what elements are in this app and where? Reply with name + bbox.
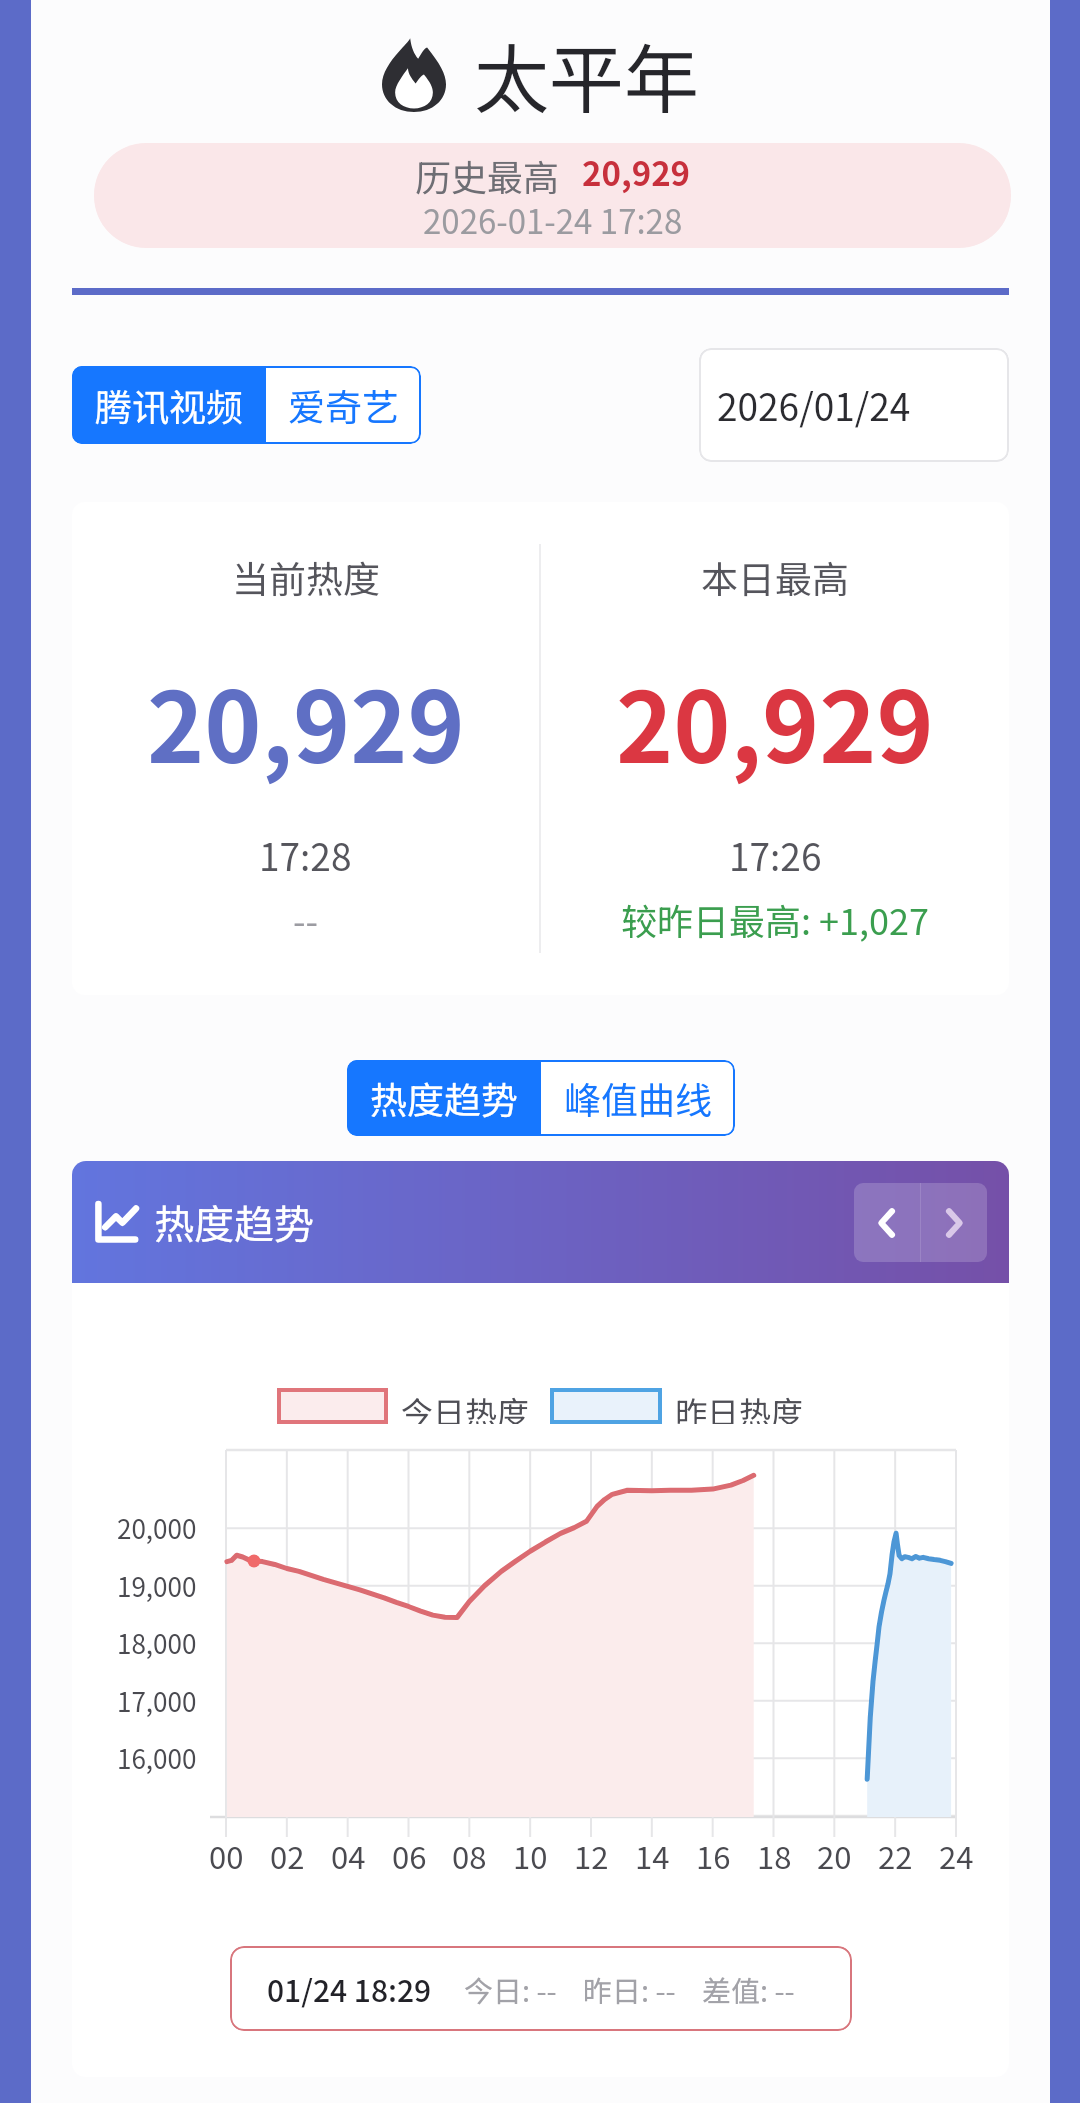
staticText: 22 bbox=[878, 1833, 913, 1878]
staticText: 热度趋势 bbox=[370, 1071, 518, 1125]
button[interactable]: 热度趋势 bbox=[347, 1060, 541, 1136]
staticText: 24 bbox=[939, 1833, 974, 1878]
staticText: 昨日热度 bbox=[675, 1388, 804, 1424]
staticText: 02 bbox=[270, 1833, 305, 1878]
staticText: 昨日: -- bbox=[583, 1968, 676, 2010]
staticText: 较昨日最高: +1,027 bbox=[621, 893, 929, 945]
staticText: 爱奇艺 bbox=[288, 378, 399, 432]
staticText: 今日: -- bbox=[464, 1968, 557, 2010]
staticText: 19,000 bbox=[117, 1567, 197, 1605]
staticText: 腾讯视频 bbox=[95, 378, 243, 432]
staticText: 16,000 bbox=[117, 1739, 197, 1777]
button[interactable]: Previous bbox=[854, 1183, 920, 1262]
staticText: 20 bbox=[817, 1833, 852, 1878]
staticText: 今日热度 bbox=[401, 1388, 530, 1424]
staticText: 当前热度 bbox=[232, 550, 380, 604]
staticText: 20,000 bbox=[117, 1509, 197, 1547]
staticText: 08 bbox=[452, 1833, 487, 1878]
staticText: 差值: -- bbox=[702, 1968, 795, 2010]
staticText: 14 bbox=[635, 1833, 670, 1878]
staticText: 20,929 bbox=[147, 650, 465, 790]
staticText: 2026-01-24 17:28 bbox=[423, 196, 683, 242]
button[interactable]: 2026/01/24 bbox=[699, 348, 1009, 462]
button[interactable]: 爱奇艺 bbox=[266, 366, 421, 444]
staticText: 20,929 bbox=[582, 148, 691, 194]
button[interactable]: Next bbox=[921, 1183, 987, 1262]
staticText: 历史最高 bbox=[415, 149, 560, 195]
staticText: 热度趋势 bbox=[154, 1193, 314, 1251]
staticText: 17:28 bbox=[259, 828, 352, 882]
staticText: -- bbox=[293, 893, 318, 945]
staticText: 峰值曲线 bbox=[564, 1071, 712, 1125]
staticText: 10 bbox=[513, 1833, 548, 1878]
staticText: 18,000 bbox=[117, 1624, 197, 1662]
button[interactable]: 峰值曲线 bbox=[541, 1060, 735, 1136]
button[interactable]: 腾讯视频 bbox=[72, 366, 266, 444]
staticText: 04 bbox=[331, 1833, 366, 1878]
staticText: 01/24 18:29 bbox=[267, 1967, 432, 2010]
staticText: 20,929 bbox=[616, 650, 934, 790]
staticText: 17:26 bbox=[729, 828, 822, 882]
staticText: 2026/01/24 bbox=[717, 378, 911, 432]
staticText: 16 bbox=[696, 1833, 731, 1878]
staticText: 18 bbox=[757, 1833, 792, 1878]
staticText: 00 bbox=[209, 1833, 244, 1878]
staticText: 本日最高 bbox=[701, 550, 849, 604]
staticText: 12 bbox=[574, 1833, 609, 1878]
staticText: 06 bbox=[392, 1833, 427, 1878]
staticText: 17,000 bbox=[117, 1682, 197, 1720]
staticText: 太平年 bbox=[474, 20, 700, 129]
